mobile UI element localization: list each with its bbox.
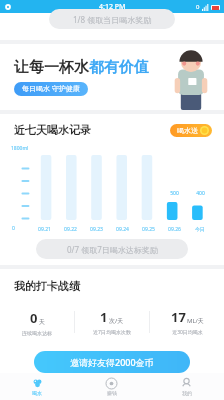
staticText: 天	[39, 318, 45, 326]
staticText: 赚钱	[107, 390, 117, 396]
staticText: 近七天喝水记录	[14, 123, 91, 137]
staticText: 0	[196, 3, 200, 11]
staticText: 近30日均喝水	[172, 329, 203, 336]
button[interactable]: 0/7 领取7日喝水达标奖励	[36, 239, 188, 259]
staticText: 我的	[182, 390, 192, 396]
staticText: 09.25	[142, 226, 155, 233]
staticText: 我的打卡战绩	[14, 279, 80, 293]
staticText: 喝水送	[177, 126, 198, 135]
staticText: 喝水	[32, 390, 42, 396]
staticText: 09.24	[116, 226, 129, 233]
staticText: 1/8 领取当日喝水奖励	[73, 14, 152, 25]
button[interactable]: 喝水	[0, 373, 74, 400]
staticText: 500	[170, 190, 179, 197]
staticText: 17	[171, 308, 186, 326]
staticText: 0	[12, 225, 15, 232]
staticText: 每日喝水 守护健康	[22, 84, 80, 94]
staticText: 近7日均喝水次数	[93, 329, 131, 336]
staticText: 09.21	[38, 226, 51, 233]
button[interactable]: 我的	[149, 373, 224, 400]
staticText: 09.22	[64, 226, 77, 233]
staticText: 09.26	[168, 226, 181, 233]
staticText: 邀请好友得2000金币	[70, 356, 154, 368]
staticText: 让每一杯水	[14, 58, 89, 77]
staticText: 今日	[195, 226, 205, 232]
staticText: 1800ml	[11, 145, 29, 152]
staticText: 0	[30, 309, 38, 327]
staticText: 400	[196, 190, 205, 197]
staticText: 0/7 领取7日喝水达标奖励	[67, 244, 158, 255]
staticText: ML/天	[187, 317, 204, 325]
staticText: 4:12 PM	[99, 2, 126, 12]
staticText: 都有价值	[89, 58, 149, 77]
staticText: 09.23	[90, 226, 103, 233]
button[interactable]: 1/8 领取当日喝水奖励	[49, 9, 175, 29]
button[interactable]: 赚钱	[74, 373, 149, 400]
button[interactable]: 邀请好友得2000金币	[34, 351, 190, 373]
button[interactable]: 喝水送	[170, 124, 212, 137]
staticText: 1	[100, 308, 108, 326]
staticText: 次/天	[109, 317, 124, 325]
staticText: 连续喝水达标	[22, 330, 52, 336]
